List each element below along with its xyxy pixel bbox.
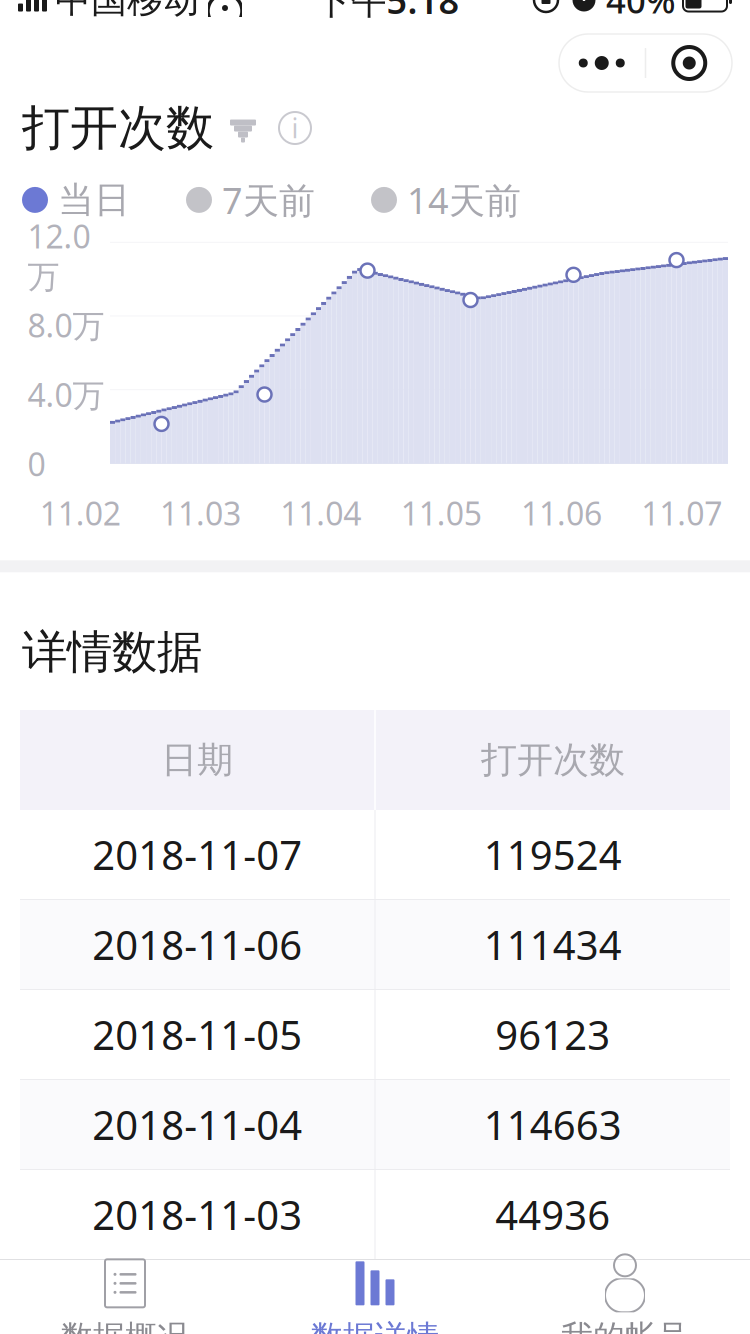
staticText: 日期 — [161, 738, 233, 782]
staticText: 2018-11-03 — [92, 1188, 302, 1241]
button[interactable]: 数据概况 — [0, 1260, 250, 1334]
staticText: 111434 — [484, 918, 622, 971]
button[interactable]: 2018-11-05 — [20, 990, 730, 1079]
staticText: 当日 — [58, 178, 130, 222]
staticText: 2018-11-05 — [92, 1008, 302, 1061]
staticText: 11.05 — [401, 492, 482, 534]
button[interactable]: 数据详情 — [250, 1260, 500, 1334]
staticText: 下午5:18 — [314, 0, 459, 24]
staticText: 详情数据 — [22, 624, 202, 680]
staticText: 96123 — [495, 1008, 610, 1061]
staticText: 7天前 — [222, 176, 315, 224]
staticText: 2018-11-07 — [92, 828, 302, 881]
staticText: 2018-11-04 — [92, 1098, 302, 1151]
staticText: 119524 — [484, 828, 622, 881]
button[interactable]: 2018-11-06 — [20, 900, 730, 989]
staticText: 40% — [606, 0, 676, 23]
staticText: 数据概况 — [61, 1317, 189, 1334]
button[interactable]: 更多 — [559, 34, 645, 92]
staticText: i — [291, 110, 298, 146]
button[interactable]: 关闭 — [646, 34, 732, 92]
button[interactable]: 2018-11-04 — [20, 1080, 730, 1169]
staticText: 11.03 — [160, 492, 241, 534]
staticText: 11.06 — [521, 492, 602, 534]
staticText: 8.0万 — [27, 304, 104, 346]
staticText: 2018-11-06 — [92, 918, 302, 971]
staticText: 我的帐号 — [561, 1317, 689, 1334]
staticText: 打开次数 — [481, 738, 625, 782]
staticText: 11.07 — [641, 492, 722, 534]
button[interactable]: 说明 — [276, 109, 314, 147]
staticText: 44936 — [495, 1188, 610, 1241]
staticText: 114663 — [484, 1098, 622, 1151]
staticText: 中国移动 — [55, 0, 199, 22]
staticText: 11.02 — [40, 492, 121, 534]
staticText: 数据详情 — [311, 1317, 439, 1334]
staticText: 0 — [27, 443, 45, 485]
staticText: 14天前 — [407, 176, 521, 224]
staticText: 11.04 — [280, 492, 361, 534]
staticText: 4.0万 — [27, 373, 104, 416]
button[interactable]: 我的帐号 — [500, 1260, 750, 1334]
staticText: 12.0万 — [27, 215, 90, 297]
button[interactable]: 2018-11-07 — [20, 810, 730, 899]
button[interactable]: 2018-11-03 — [20, 1170, 730, 1259]
staticText: 打开次数 — [22, 98, 214, 157]
button[interactable]: 打开次数 — [0, 98, 750, 158]
